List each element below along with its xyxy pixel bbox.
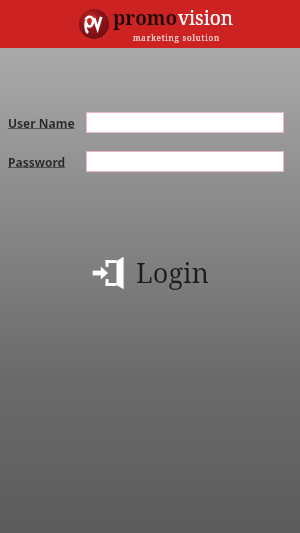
staticText: Login	[136, 254, 209, 291]
staticText: promo	[113, 5, 178, 31]
staticText: User Name	[8, 115, 75, 131]
staticText: marketing solution	[133, 32, 220, 43]
button[interactable]	[86, 112, 284, 133]
button[interactable]: Login	[84, 250, 217, 295]
staticText: vision	[178, 5, 233, 31]
other: Login	[92, 256, 126, 290]
button[interactable]	[86, 151, 284, 172]
staticText: Password	[8, 154, 66, 170]
